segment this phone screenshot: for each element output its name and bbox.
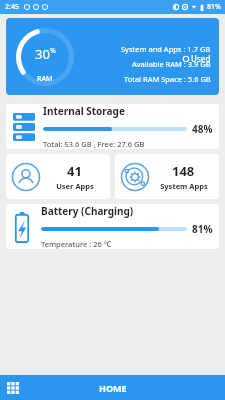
staticText: System and Apps : 1.7 GB: [121, 44, 211, 54]
staticText: Temperature : 26 ℃: [41, 239, 112, 249]
staticText: 48%: [192, 122, 213, 136]
button[interactable]: Apps grid: [0, 377, 26, 399]
staticText: 2:45: [5, 2, 19, 12]
staticText: 148: [172, 162, 195, 180]
staticText: Available RAM : 3.9 GB: [132, 59, 211, 69]
staticText: User Apps: [56, 181, 94, 191]
staticText: Used: [191, 53, 211, 64]
staticText: Battery (Charging): [41, 204, 134, 218]
button[interactable]: HOME: [87, 377, 139, 399]
button[interactable]: Battery (Charging): [6, 204, 219, 249]
staticText: 30: [35, 45, 50, 63]
staticText: RAM: [37, 74, 53, 84]
staticText: %: [50, 46, 56, 56]
button[interactable]: Internal Storage: [6, 104, 219, 149]
button[interactable]: Used: [6, 18, 219, 95]
staticText: HOME: [99, 382, 127, 394]
staticText: Total RAM Space : 5.6 GB: [124, 74, 211, 84]
staticText: System Apps: [160, 181, 208, 191]
button[interactable]: 148: [115, 154, 219, 199]
button[interactable]: 41: [6, 154, 110, 199]
staticText: Total: 53.6 GB , Free: 27.6 GB: [43, 139, 145, 149]
staticText: Internal Storage: [43, 104, 125, 118]
staticText: 81%: [192, 222, 213, 236]
staticText: 81%: [207, 2, 221, 12]
staticText: 41: [67, 162, 82, 180]
